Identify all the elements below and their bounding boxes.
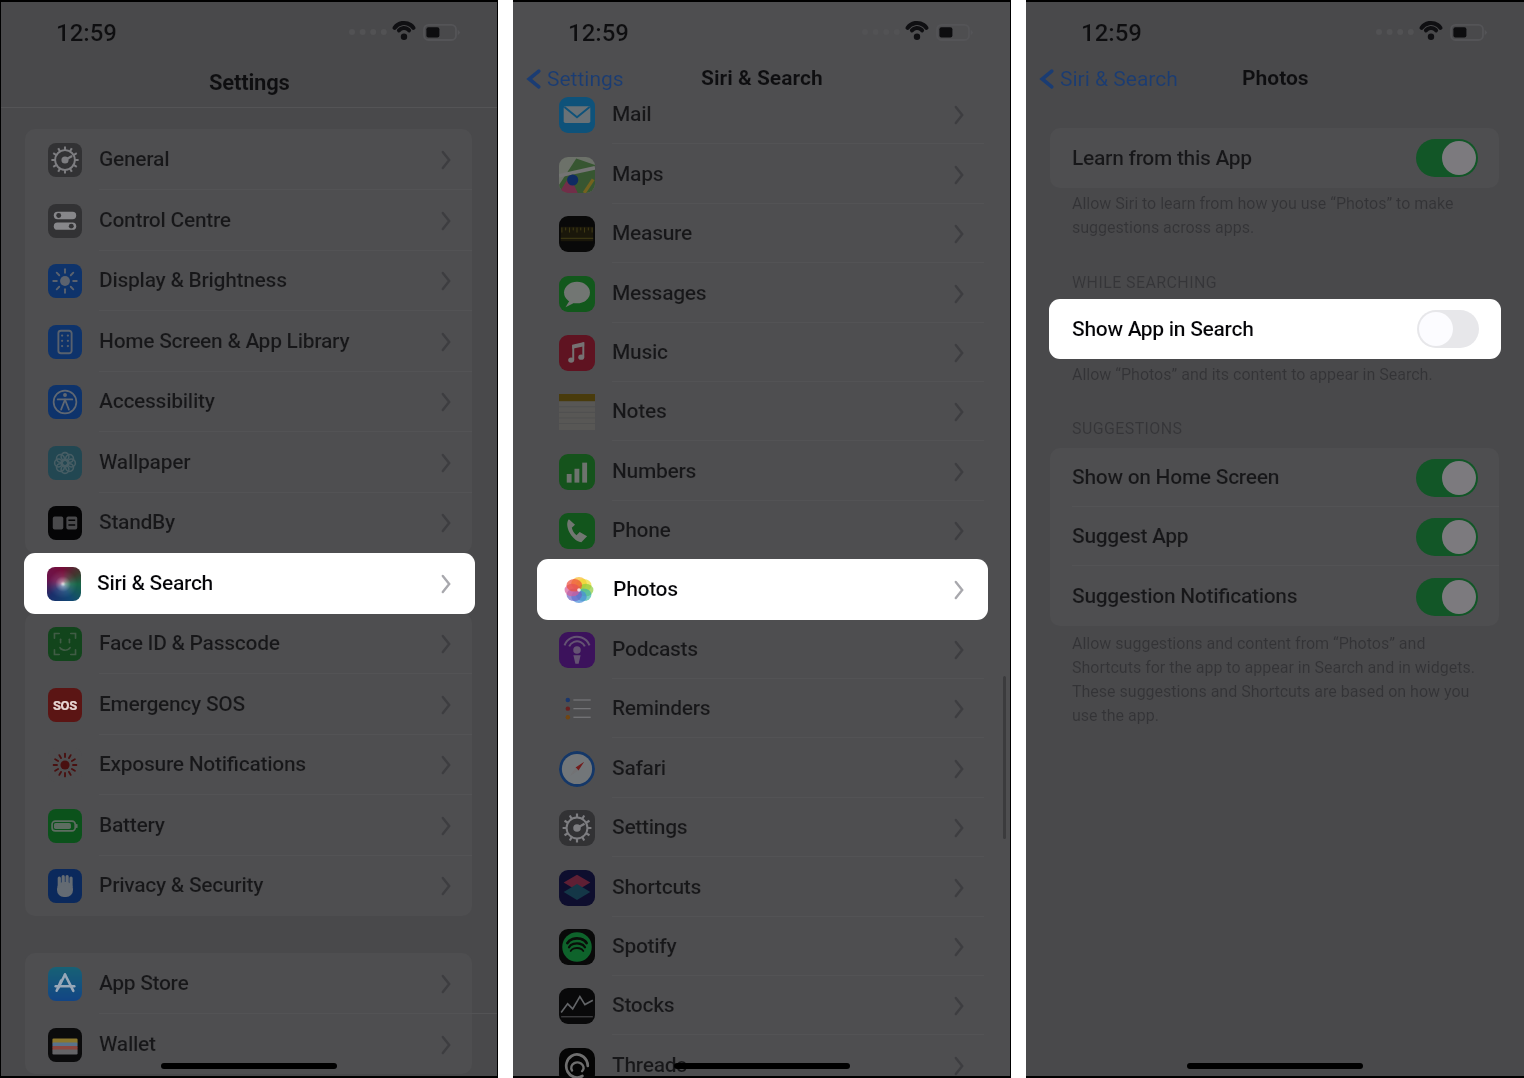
button[interactable]: Show on Home Screen bbox=[1026, 448, 1524, 507]
staticText: App Store bbox=[99, 971, 189, 996]
staticText: 12:59 bbox=[1081, 19, 1142, 47]
button[interactable]: Music bbox=[513, 323, 1010, 382]
button[interactable]: Suggestion Notifications bbox=[1026, 567, 1524, 626]
staticText: Photos bbox=[1242, 66, 1309, 91]
button[interactable]: Notes bbox=[513, 382, 1010, 441]
staticText: 12:59 bbox=[568, 19, 629, 47]
staticText: Phone bbox=[612, 518, 671, 543]
staticText: General bbox=[99, 147, 170, 172]
other: On bbox=[1416, 518, 1478, 556]
staticText: Learn from this App bbox=[1072, 146, 1252, 171]
staticText: Siri & Search bbox=[701, 66, 823, 91]
button[interactable]: Wallpaper bbox=[1, 432, 497, 493]
other: On bbox=[1416, 459, 1478, 497]
staticText: Home Screen & App Library bbox=[99, 329, 350, 354]
staticText: Podcasts bbox=[612, 637, 698, 662]
button[interactable]: Show App in Search bbox=[1049, 299, 1501, 359]
button[interactable]: Face ID & Passcode bbox=[1, 613, 497, 674]
button[interactable]: Photos bbox=[537, 559, 988, 620]
button[interactable]: Shortcuts bbox=[513, 858, 1010, 917]
staticText: Privacy & Security bbox=[99, 873, 264, 898]
staticText: Music bbox=[612, 340, 668, 365]
button[interactable]: Control Centre bbox=[1, 190, 497, 251]
button[interactable]: Siri & Search bbox=[1038, 66, 1178, 92]
staticText: Messages bbox=[612, 281, 707, 306]
button[interactable]: Messages bbox=[513, 264, 1010, 323]
staticText: WHILE SEARCHING bbox=[1072, 273, 1218, 292]
staticText: Suggestion Notifications bbox=[1072, 584, 1298, 609]
other: On bbox=[1416, 139, 1478, 177]
button[interactable]: Numbers bbox=[513, 442, 1010, 501]
button[interactable]: Safari bbox=[513, 739, 1010, 798]
button[interactable]: Settings bbox=[525, 66, 624, 92]
staticText: Wallet bbox=[99, 1032, 156, 1057]
button[interactable]: Maps bbox=[513, 145, 1010, 204]
staticText: Siri & Search bbox=[701, 66, 823, 91]
staticText: Measure bbox=[612, 221, 692, 246]
staticText: Numbers bbox=[612, 459, 697, 484]
staticText: Siri & Search bbox=[1060, 67, 1178, 92]
staticText: Siri & Search bbox=[97, 571, 213, 596]
button[interactable]: Exposure Notifications bbox=[1, 734, 497, 795]
staticText: Settings bbox=[209, 70, 290, 96]
staticText: SUGGESTIONS bbox=[1072, 419, 1183, 438]
button[interactable]: Learn from this App bbox=[1026, 128, 1524, 188]
button[interactable]: Spotify bbox=[513, 917, 1010, 976]
staticText: Reminders bbox=[612, 696, 711, 721]
staticText: Battery bbox=[99, 813, 165, 838]
button[interactable]: Settings bbox=[513, 798, 1010, 857]
staticText: Shortcuts bbox=[612, 875, 702, 900]
staticText: Display & Brightness bbox=[99, 268, 287, 293]
staticText: Safari bbox=[612, 756, 666, 781]
staticText: Settings bbox=[612, 815, 688, 840]
button[interactable]: Wallet bbox=[1, 1014, 497, 1075]
button[interactable]: Phone bbox=[513, 501, 1010, 560]
button[interactable]: Measure bbox=[513, 204, 1010, 263]
staticText: Allow suggestions and content from “Phot… bbox=[1072, 634, 1475, 725]
staticText: Wallpaper bbox=[99, 450, 191, 475]
staticText: Allow “Photos” and its content to appear… bbox=[1072, 365, 1433, 384]
staticText: Threads bbox=[612, 1053, 687, 1078]
button[interactable]: Battery bbox=[1, 795, 497, 856]
button[interactable]: Threads bbox=[513, 1036, 1010, 1078]
staticText: Exposure Notifications bbox=[99, 752, 306, 777]
staticText: Show on Home Screen bbox=[1072, 465, 1280, 490]
button[interactable]: Suggest App bbox=[1026, 507, 1524, 566]
staticText: Show App in Search bbox=[1072, 317, 1254, 342]
staticText: Accessibility bbox=[99, 389, 215, 414]
button[interactable]: Display & Brightness bbox=[1, 250, 497, 311]
other: Off bbox=[1417, 310, 1479, 348]
button[interactable]: Settings bbox=[525, 66, 624, 92]
staticText: Notes bbox=[612, 399, 667, 424]
button[interactable]: Podcasts bbox=[513, 620, 1010, 679]
staticText: Photos bbox=[613, 577, 678, 602]
staticText: 12:59 bbox=[568, 19, 629, 47]
button[interactable]: Accessibility bbox=[1, 371, 497, 432]
button[interactable]: StandBy bbox=[1, 492, 497, 553]
staticText: Face ID & Passcode bbox=[99, 631, 280, 656]
button[interactable]: Reminders bbox=[513, 679, 1010, 738]
button[interactable]: Home Screen & App Library bbox=[1, 311, 497, 372]
staticText: Suggest App bbox=[1072, 524, 1189, 549]
staticText: Mail bbox=[612, 102, 652, 127]
staticText: SOS bbox=[53, 698, 77, 713]
staticText: Maps bbox=[612, 162, 664, 187]
other: On bbox=[1416, 578, 1478, 616]
staticText: StandBy bbox=[99, 510, 175, 535]
button[interactable]: Siri & Search bbox=[24, 553, 475, 614]
button[interactable]: SOS bbox=[1, 674, 497, 735]
staticText: Settings bbox=[547, 67, 624, 92]
staticText: Control Centre bbox=[99, 208, 231, 233]
staticText: Allow Siri to learn from how you use “Ph… bbox=[1072, 194, 1454, 237]
button[interactable]: Stocks bbox=[513, 976, 1010, 1035]
staticText: Stocks bbox=[612, 993, 675, 1018]
staticText: Emergency SOS bbox=[99, 692, 245, 717]
button[interactable]: Privacy & Security bbox=[1, 855, 497, 916]
staticText: Spotify bbox=[612, 934, 677, 959]
button[interactable]: App Store bbox=[1, 953, 497, 1014]
staticText: 12:59 bbox=[56, 19, 117, 47]
button[interactable]: Mail bbox=[513, 85, 1010, 144]
button[interactable]: General bbox=[1, 129, 497, 190]
staticText: Settings bbox=[547, 67, 624, 92]
